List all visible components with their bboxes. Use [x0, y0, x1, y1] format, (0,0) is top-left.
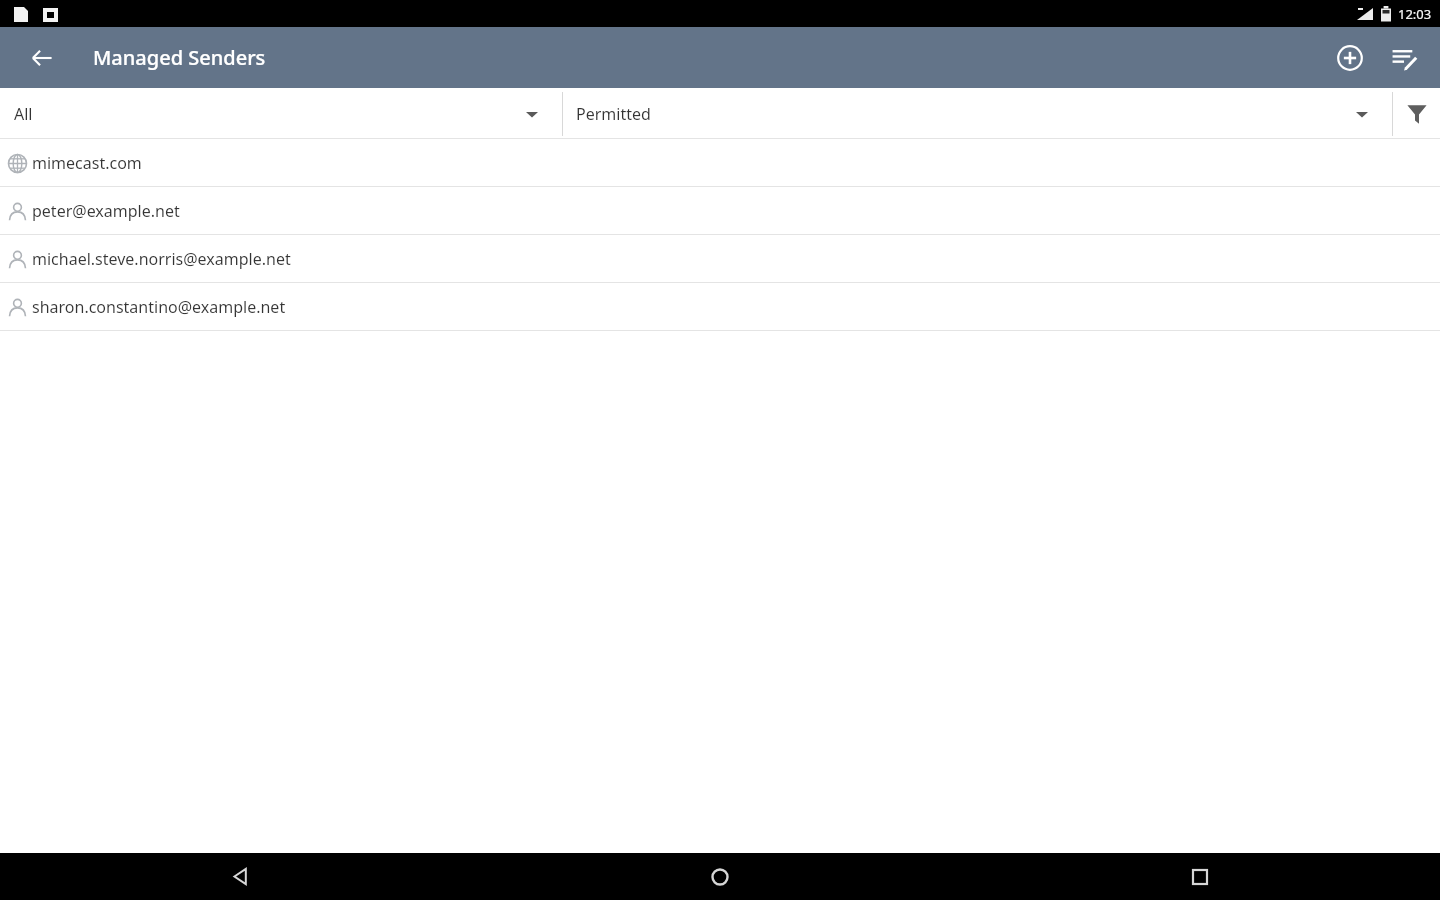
- staticText: All: [14, 103, 33, 125]
- button[interactable]: Home: [480, 853, 960, 900]
- button[interactable]: Add sender: [1326, 34, 1374, 82]
- staticText: Managed Senders: [93, 44, 266, 71]
- staticText: Permitted: [576, 103, 651, 125]
- button[interactable]: michael.steve.norris@example.net: [0, 235, 1440, 283]
- staticText: mimecast.com: [32, 152, 142, 174]
- button[interactable]: sharon.constantino@example.net: [0, 283, 1440, 331]
- button[interactable]: All: [0, 88, 562, 139]
- button[interactable]: Back: [20, 36, 64, 80]
- button[interactable]: Permitted: [563, 88, 1392, 139]
- button[interactable]: Recent apps: [960, 853, 1440, 900]
- button[interactable]: mimecast.com: [0, 139, 1440, 187]
- button[interactable]: Filter: [1393, 88, 1440, 139]
- button[interactable]: Edit list: [1380, 34, 1428, 82]
- button[interactable]: peter@example.net: [0, 187, 1440, 235]
- staticText: michael.steve.norris@example.net: [32, 248, 291, 270]
- staticText: peter@example.net: [32, 200, 180, 222]
- staticText: sharon.constantino@example.net: [32, 296, 286, 318]
- button[interactable]: Back: [0, 853, 480, 900]
- staticText: 12:03: [1398, 5, 1432, 23]
